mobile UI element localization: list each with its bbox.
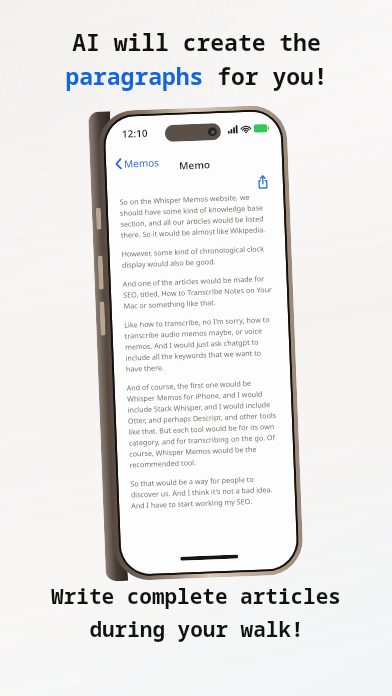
staticText: And one of the articles would be made fo… <box>122 273 276 311</box>
staticText: paragraphs for you! <box>65 60 328 91</box>
staticText: Like how to transcribe, no I'm sorry, ho… <box>124 314 278 374</box>
staticText: AI will create the <box>72 26 321 57</box>
staticText: 12:10 <box>122 126 148 141</box>
staticText: So that would be a way for people to dis… <box>130 473 283 511</box>
staticText: Memos <box>124 155 159 171</box>
staticText: However, some kind of chronological cloc… <box>121 243 274 270</box>
staticText: Write complete articles <box>51 582 341 611</box>
staticText: So on the Whisper Memos website, we shou… <box>119 191 273 240</box>
staticText: Memo <box>179 157 210 172</box>
button[interactable]: Share <box>253 172 272 191</box>
button[interactable]: Memos <box>115 155 159 171</box>
staticText: And of course, the first one would be Wh… <box>126 377 282 470</box>
staticText: during your walk! <box>89 615 304 644</box>
